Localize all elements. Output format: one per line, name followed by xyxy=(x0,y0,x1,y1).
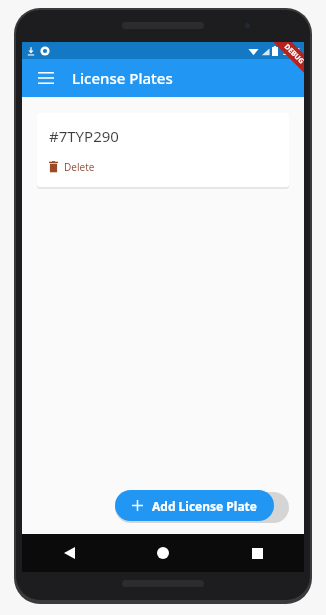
button[interactable]: #7TYP290 xyxy=(37,113,289,187)
staticText: DEBUG xyxy=(282,42,304,67)
button[interactable]: Recent apps xyxy=(210,534,304,572)
staticText: #7TYP290 xyxy=(49,126,119,146)
staticText: License Plates xyxy=(72,68,173,88)
staticText: Delete xyxy=(64,160,95,174)
staticText: Add License Plate xyxy=(152,498,257,514)
button[interactable]: Open navigation menu xyxy=(30,62,62,94)
button[interactable]: Add License Plate xyxy=(115,490,274,521)
button[interactable]: Delete xyxy=(49,158,101,176)
button[interactable]: Home xyxy=(116,534,210,572)
button[interactable]: Back xyxy=(22,534,116,572)
staticText: 5:21 xyxy=(283,45,301,57)
